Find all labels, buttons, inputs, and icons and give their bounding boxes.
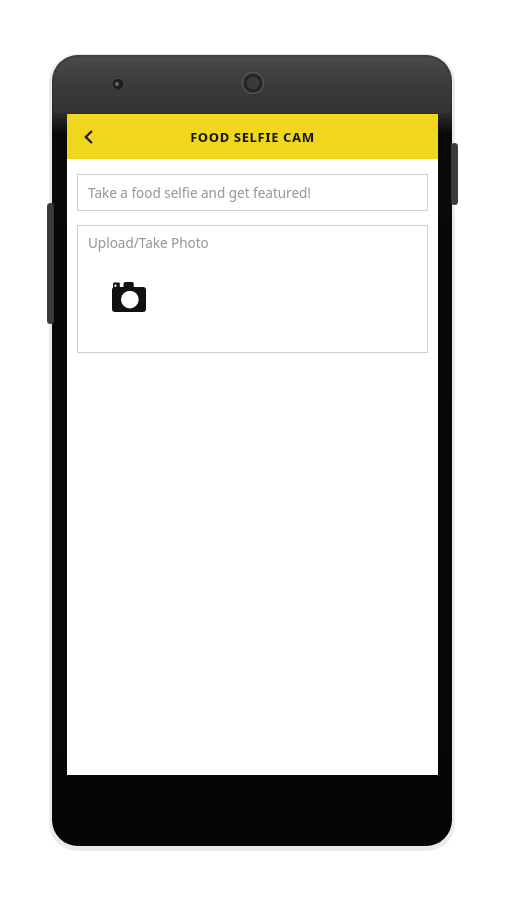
button[interactable]: Take a food selfie and get featured! [77, 174, 428, 211]
staticText: FOOD SELFIE CAM [190, 128, 315, 146]
staticText: Upload/Take Photo [88, 234, 209, 252]
staticText: Take a food selfie and get featured! [88, 184, 311, 202]
button[interactable]: Take photo [112, 282, 146, 312]
button[interactable]: Back [67, 115, 111, 159]
